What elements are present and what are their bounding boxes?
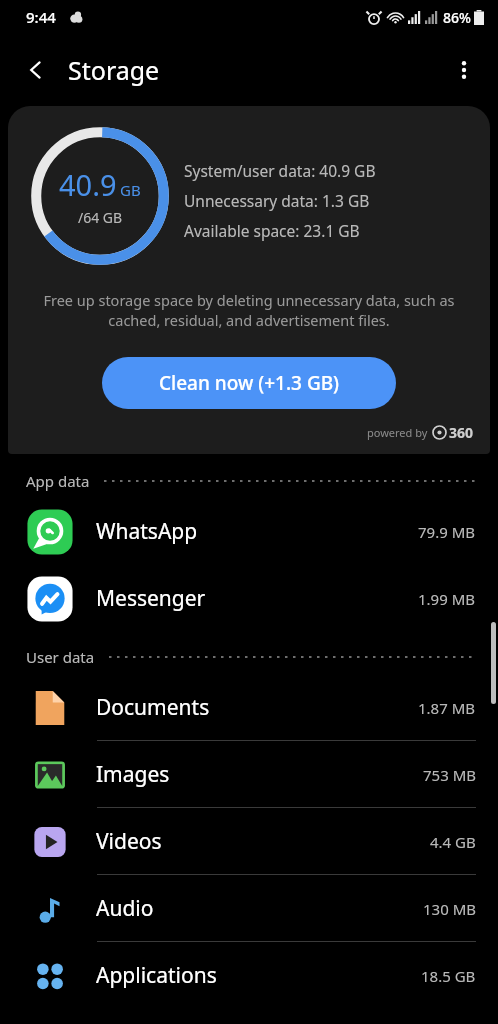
button[interactable]: Messenger bbox=[0, 565, 498, 632]
button[interactable]: Audio bbox=[0, 875, 498, 942]
staticText: Free up storage space by deleting unnece… bbox=[34, 290, 464, 331]
staticText: Unnecessary data: 1.3 GB bbox=[184, 190, 370, 211]
staticText: WhatsApp bbox=[96, 517, 198, 546]
staticText: 4.4 GB bbox=[430, 832, 476, 852]
staticText: System/user data: 40.9 GB bbox=[184, 160, 376, 181]
button[interactable]: Applications bbox=[0, 942, 498, 1009]
staticText: GB bbox=[120, 180, 141, 200]
staticText: 40.9 bbox=[59, 165, 117, 204]
staticText: Messenger bbox=[96, 584, 206, 613]
staticText: Storage bbox=[68, 53, 160, 87]
button[interactable]: Images bbox=[0, 741, 498, 808]
staticText: 9:44 bbox=[26, 7, 56, 27]
button[interactable]: WhatsApp bbox=[0, 498, 498, 565]
staticText: /64 GB bbox=[78, 208, 123, 227]
staticText: Documents bbox=[96, 693, 210, 722]
staticText: 1.99 MB bbox=[418, 589, 476, 609]
staticText: Clean now (+1.3 GB) bbox=[159, 370, 340, 396]
staticText: Audio bbox=[96, 894, 154, 923]
staticText: Applications bbox=[96, 961, 217, 990]
staticText: 79.9 MB bbox=[418, 522, 476, 542]
staticText: 18.5 GB bbox=[421, 966, 476, 986]
staticText: 753 MB bbox=[423, 765, 476, 785]
staticText: 86% bbox=[443, 8, 471, 27]
button[interactable]: Documents bbox=[0, 674, 498, 741]
staticText: User data bbox=[26, 647, 95, 667]
staticText: Videos bbox=[96, 827, 162, 856]
staticText: Available space: 23.1 GB bbox=[184, 220, 360, 241]
staticText: 1.87 MB bbox=[418, 698, 476, 718]
staticText: Images bbox=[96, 760, 170, 789]
button[interactable]: Back bbox=[14, 48, 58, 92]
staticText: App data bbox=[26, 471, 90, 491]
staticText: powered by bbox=[367, 425, 428, 440]
staticText: 130 MB bbox=[423, 899, 476, 919]
button[interactable]: Clean now (+1.3 GB) bbox=[102, 357, 396, 409]
button[interactable]: More options bbox=[442, 48, 486, 92]
staticText: 360 bbox=[449, 423, 474, 442]
button[interactable]: Videos bbox=[0, 808, 498, 875]
